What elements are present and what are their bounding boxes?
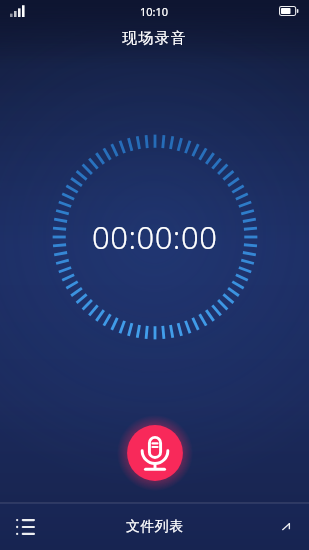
staticText: 现场录音 — [122, 29, 187, 48]
staticText: 文件列表 — [126, 518, 184, 536]
staticText: 10:10 — [140, 4, 169, 19]
staticText: 00:00:00 — [92, 216, 218, 258]
button[interactable]: Record — [118, 416, 192, 490]
button[interactable]: More — [271, 512, 301, 542]
button[interactable]: File list — [8, 510, 42, 544]
button[interactable]: 文件列表 — [126, 518, 184, 536]
